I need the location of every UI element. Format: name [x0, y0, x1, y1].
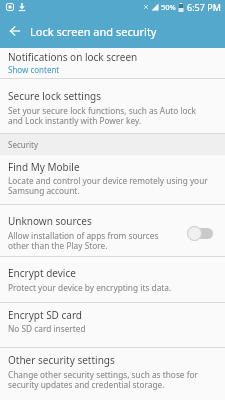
staticText: Find My Mobile	[8, 160, 80, 174]
staticText: 50%	[161, 2, 176, 12]
staticText: Other security settings	[8, 353, 115, 367]
staticText: 6:57 PM	[187, 1, 221, 13]
staticText: Protect your device by encrypting its da…	[8, 282, 172, 293]
button[interactable]: Unknown sources	[0, 205, 225, 256]
staticText: Set your secure lock functions, such as …	[8, 105, 197, 126]
staticText: Change other security settings, such as …	[8, 369, 198, 390]
button[interactable]: Other security settings	[0, 348, 225, 398]
button[interactable]	[187, 225, 213, 241]
staticText: Encrypt SD card	[8, 308, 83, 322]
button[interactable]: Encrypt device	[0, 257, 225, 302]
staticText: Unknown sources	[8, 214, 92, 228]
staticText: Security	[8, 139, 39, 150]
staticText: Locate and control your device remotely …	[8, 175, 208, 196]
staticText: Show content	[8, 64, 60, 75]
button[interactable]: Find My Mobile	[0, 155, 225, 204]
staticText: Notifications on lock screen	[8, 50, 138, 64]
staticText: Encrypt device	[8, 266, 76, 280]
staticText: Lock screen and security	[30, 24, 157, 39]
staticText: Allow installation of apps from sources …	[8, 230, 159, 251]
button[interactable]	[0, 14, 30, 48]
button[interactable]: Notifications on lock screen	[0, 48, 225, 78]
button[interactable]: Secure lock settings	[0, 79, 225, 133]
button[interactable]: Encrypt SD card	[0, 303, 225, 347]
staticText: Secure lock settings	[8, 89, 101, 103]
staticText: No SD card inserted	[8, 323, 86, 334]
